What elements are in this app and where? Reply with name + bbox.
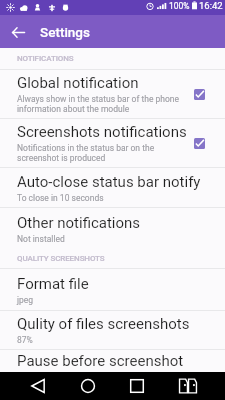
staticText: Auto-close status bar notify bbox=[17, 173, 201, 191]
staticText: Screenshots notifications bbox=[17, 123, 187, 141]
staticText: jpeg bbox=[17, 295, 34, 305]
button[interactable]: Qulity of files screenshots bbox=[0, 311, 225, 350]
staticText: Not installed bbox=[17, 234, 65, 244]
staticText: 16:42 bbox=[199, 0, 223, 11]
staticText: Qulity of files screenshots bbox=[17, 315, 190, 333]
button[interactable]: Global notification bbox=[0, 70, 225, 119]
button[interactable]: Pause before screenshot bbox=[0, 350, 225, 372]
button[interactable]: Back bbox=[24, 372, 52, 400]
button[interactable]: Home bbox=[74, 372, 102, 400]
button[interactable]: Back bbox=[2, 16, 34, 48]
staticText: Format file bbox=[17, 275, 89, 293]
button[interactable]: Other notifications bbox=[0, 208, 225, 249]
staticText: Notifications in the status bar on the s… bbox=[17, 143, 155, 163]
staticText: 100% bbox=[169, 1, 190, 11]
staticText: Always show in the status bar of the pho… bbox=[17, 94, 180, 114]
button[interactable]: Screenshots notifications bbox=[0, 119, 225, 168]
staticText: Settings bbox=[40, 24, 90, 40]
staticText: NOTIFICATIONS bbox=[17, 54, 74, 63]
button[interactable]: Global notification bbox=[186, 81, 212, 107]
staticText: Other notifications bbox=[17, 214, 141, 232]
button[interactable]: Recent apps bbox=[123, 372, 151, 400]
button[interactable]: Auto-close status bar notify bbox=[0, 168, 225, 208]
staticText: Pause before screenshot bbox=[17, 352, 184, 370]
button[interactable]: Screenshots notifications bbox=[186, 130, 212, 156]
staticText: Global notification bbox=[17, 74, 139, 92]
button[interactable]: Format file bbox=[0, 269, 225, 311]
staticText: 87% bbox=[17, 335, 33, 345]
staticText: To close in 10 seconds bbox=[17, 193, 104, 203]
button[interactable]: Screenshot bbox=[174, 372, 202, 400]
staticText: QUALITY SCREENSHOTS bbox=[17, 254, 105, 263]
